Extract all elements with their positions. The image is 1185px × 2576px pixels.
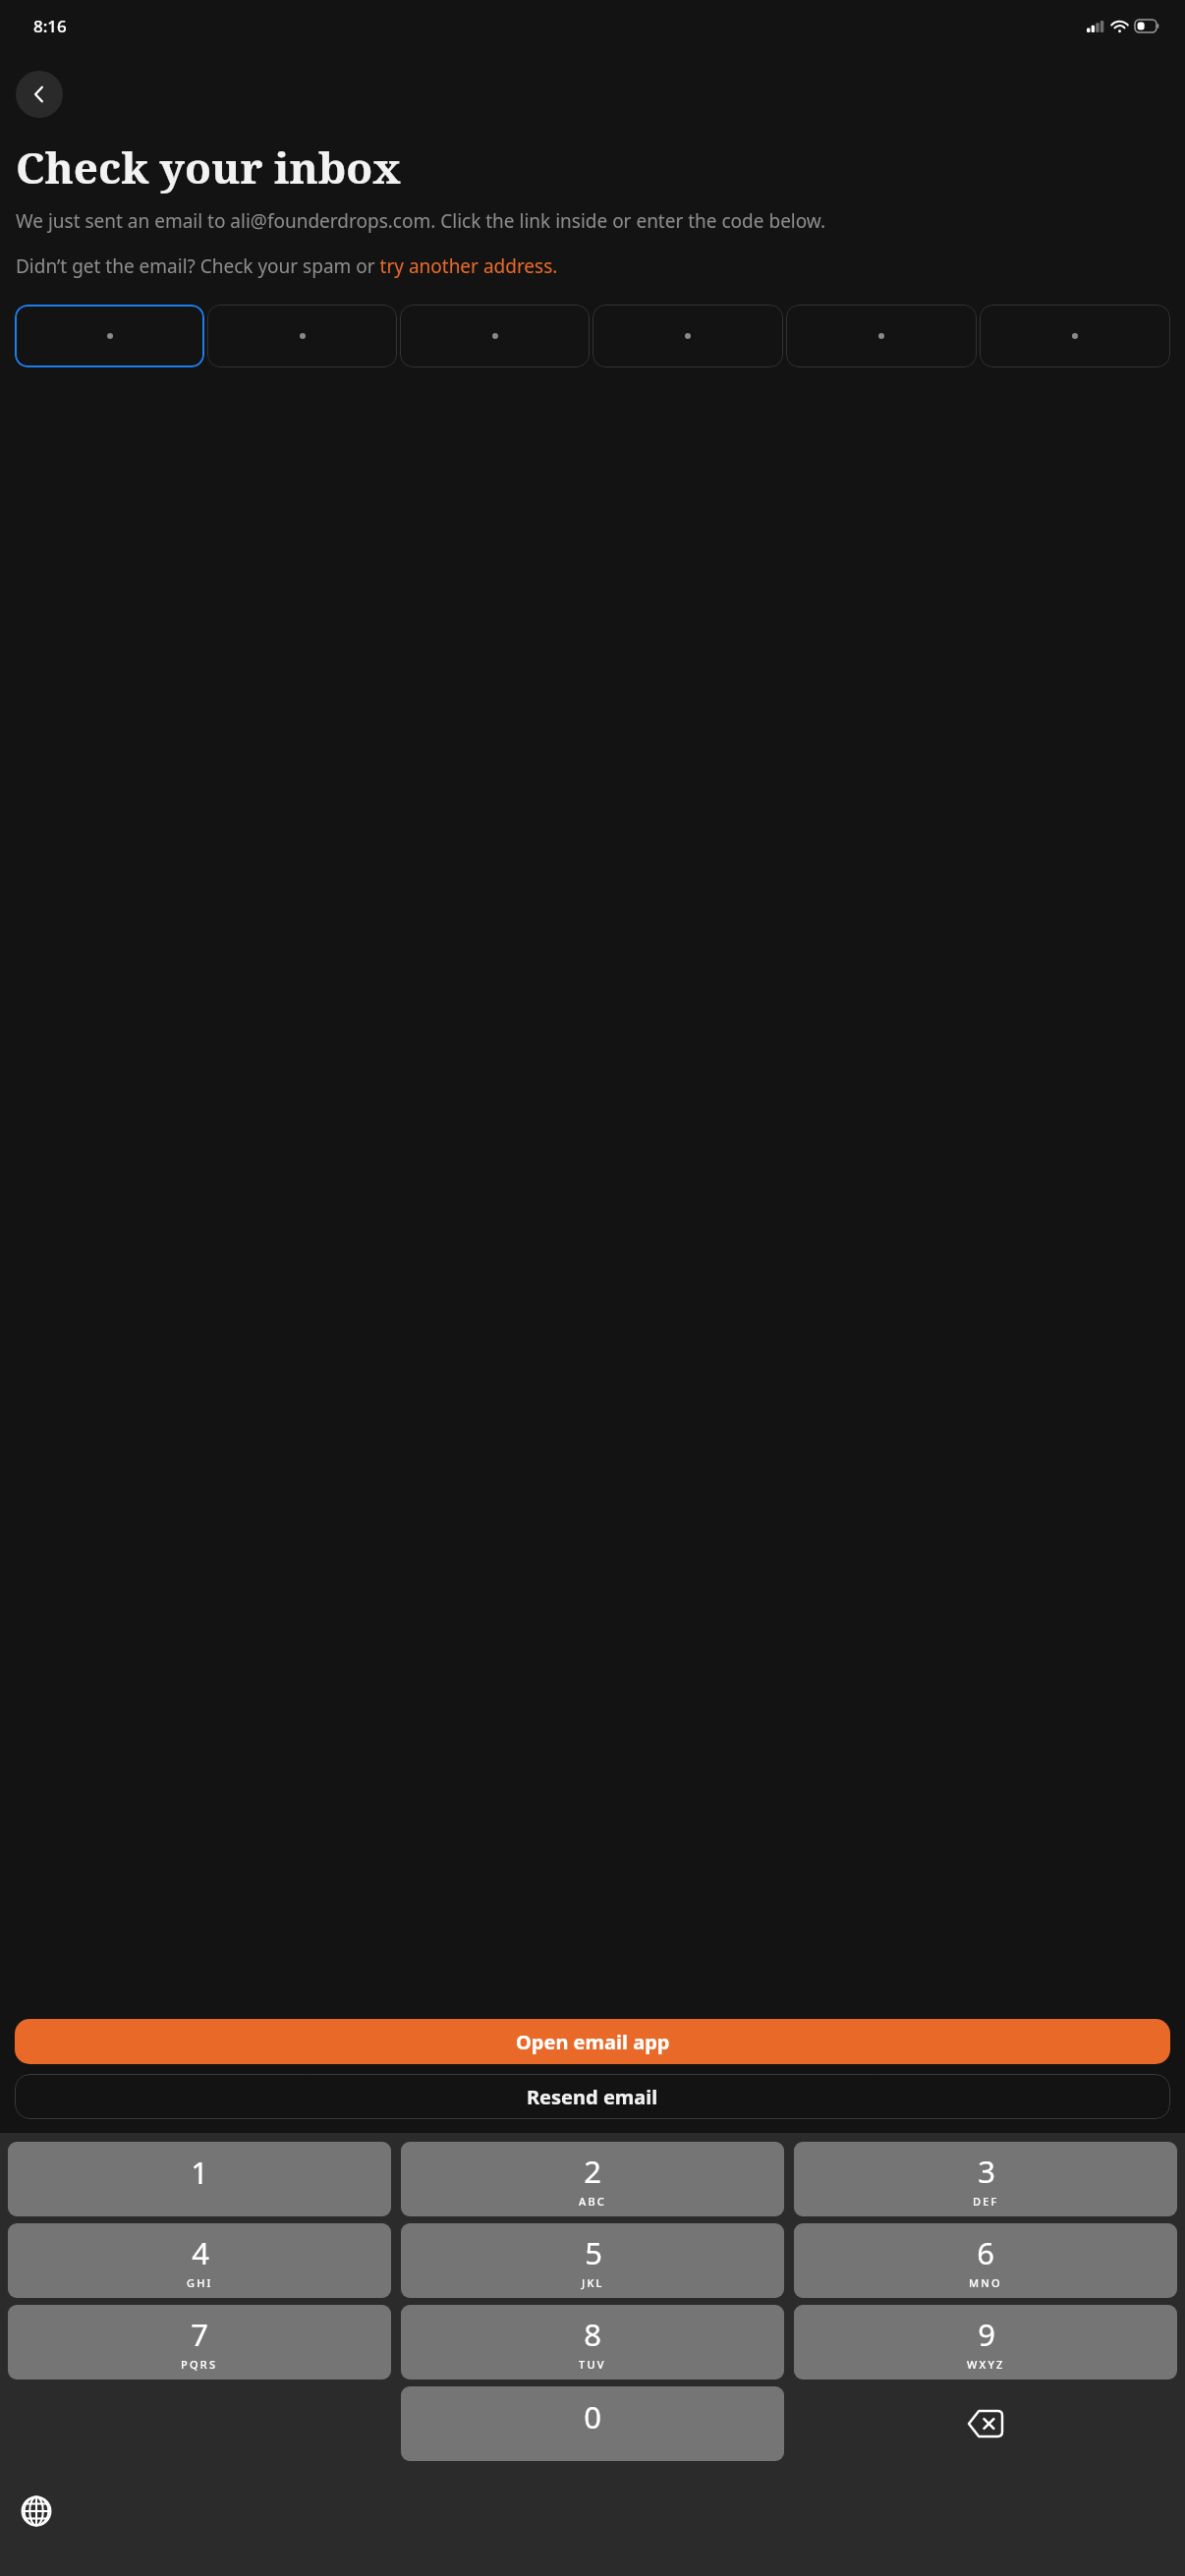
staticText: JKL xyxy=(582,2275,604,2290)
button[interactable]: Code digit 5 xyxy=(786,305,977,367)
button[interactable]: Open email app xyxy=(15,2019,1170,2064)
staticText: DEF xyxy=(973,2194,999,2209)
staticText: Open email app xyxy=(516,2029,670,2055)
button[interactable]: 3 xyxy=(794,2142,1177,2216)
staticText: Didn’t get the email? Check your spam or… xyxy=(16,253,558,279)
staticText: WXYZ xyxy=(967,2357,1005,2372)
staticText: 7 xyxy=(191,2314,208,2355)
button[interactable]: Didn’t get the email? Check your spam or… xyxy=(16,253,558,279)
staticText: 8 xyxy=(584,2314,601,2355)
button[interactable]: 5 xyxy=(401,2223,784,2298)
button[interactable]: 4 xyxy=(8,2223,391,2298)
button[interactable]: Change keyboard language xyxy=(20,2485,53,2538)
button[interactable]: 1 xyxy=(8,2142,391,2216)
button[interactable]: Code digit 2 xyxy=(207,305,397,367)
staticText: 9 xyxy=(978,2314,995,2355)
button[interactable]: Back xyxy=(16,71,63,118)
button[interactable]: 8 xyxy=(401,2305,784,2380)
staticText: 3 xyxy=(978,2151,995,2192)
staticText: TUV xyxy=(579,2357,606,2372)
staticText: ABC xyxy=(579,2194,606,2209)
button[interactable]: 6 xyxy=(794,2223,1177,2298)
button[interactable]: Backspace xyxy=(789,2386,1182,2461)
button[interactable]: 2 xyxy=(401,2142,784,2216)
button[interactable]: Code digit 6 xyxy=(980,305,1170,367)
staticText: MNO xyxy=(969,2275,1002,2290)
staticText: 0 xyxy=(584,2396,601,2437)
button[interactable]: Code digit 4 xyxy=(592,305,783,367)
staticText: 5 xyxy=(585,2232,602,2273)
staticText: 2 xyxy=(584,2151,601,2192)
staticText: Resend email xyxy=(527,2084,658,2110)
button[interactable]: Code digit 3 xyxy=(400,305,590,367)
staticText: 4 xyxy=(192,2232,209,2273)
button[interactable]: Code digit 1 xyxy=(15,305,204,367)
button[interactable]: 7 xyxy=(8,2305,391,2380)
staticText: Check your inbox xyxy=(16,138,401,196)
staticText: 6 xyxy=(977,2232,994,2273)
staticText: 8:16 xyxy=(33,15,67,37)
button[interactable]: 9 xyxy=(794,2305,1177,2380)
staticText: We just sent an email to ali@founderdrop… xyxy=(16,208,826,234)
staticText: PQRS xyxy=(181,2357,218,2372)
button[interactable]: 0 xyxy=(401,2386,784,2461)
button[interactable]: Resend email xyxy=(15,2074,1170,2119)
staticText: 1 xyxy=(191,2152,208,2193)
staticText: GHI xyxy=(187,2275,213,2290)
